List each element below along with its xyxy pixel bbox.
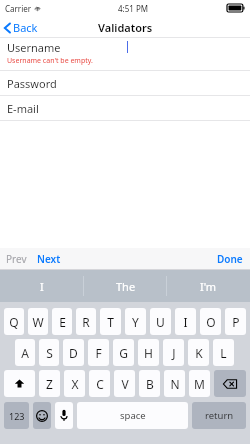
- staticText: F: [95, 345, 102, 361]
- button[interactable]: P: [225, 308, 246, 335]
- button[interactable]: Prev: [0, 249, 33, 269]
- button[interactable]: space: [77, 402, 188, 429]
- staticText: return: [205, 409, 234, 422]
- staticText: S: [46, 345, 53, 361]
- button[interactable]: Y: [125, 308, 146, 335]
- staticText: G: [119, 345, 128, 361]
- button[interactable]: Done: [210, 249, 250, 269]
- staticText: Z: [46, 376, 53, 392]
- button[interactable]: X: [64, 370, 85, 397]
- staticText: B: [146, 376, 154, 392]
- staticText: K: [195, 345, 203, 361]
- staticText: H: [144, 345, 153, 361]
- button[interactable]: V: [114, 370, 135, 397]
- button[interactable]: Shift: [4, 370, 35, 397]
- button[interactable]: 123: [4, 402, 29, 429]
- button[interactable]: N: [164, 370, 185, 397]
- staticText: R: [82, 314, 90, 330]
- staticText: J: [172, 345, 176, 361]
- staticText: 123: [9, 410, 25, 422]
- button[interactable]: L: [213, 339, 234, 366]
- button[interactable]: Z: [39, 370, 60, 397]
- button[interactable]: I: [0, 270, 84, 302]
- button[interactable]: I'm: [167, 270, 250, 302]
- staticText: 4:51 PM: [118, 3, 149, 14]
- button[interactable]: return: [192, 402, 246, 429]
- button[interactable]: Q: [4, 308, 24, 335]
- button[interactable]: G: [113, 339, 134, 366]
- button[interactable]: The: [84, 270, 167, 302]
- staticText: U: [156, 314, 165, 330]
- staticText: C: [96, 376, 104, 392]
- button[interactable]: R: [76, 308, 96, 335]
- button[interactable]: Username: [0, 38, 250, 56]
- staticText: M: [194, 376, 205, 392]
- staticText: D: [69, 345, 78, 361]
- staticText: E-mail: [7, 101, 39, 116]
- staticText: Username: [7, 40, 61, 55]
- staticText: P: [232, 314, 240, 330]
- button[interactable]: Password: [0, 71, 250, 95]
- staticText: Validators: [98, 20, 153, 35]
- button[interactable]: E-mail: [0, 96, 250, 120]
- staticText: I: [183, 314, 188, 330]
- button[interactable]: H: [138, 339, 159, 366]
- button[interactable]: J: [163, 339, 184, 366]
- staticText: N: [170, 376, 180, 392]
- button[interactable]: Back: [0, 18, 44, 37]
- staticText: Done: [217, 252, 243, 266]
- staticText: X: [71, 376, 79, 392]
- staticText: O: [206, 314, 216, 330]
- staticText: T: [107, 314, 114, 330]
- button[interactable]: Next: [33, 249, 65, 269]
- button[interactable]: Emoji: [33, 402, 51, 429]
- staticText: Y: [132, 314, 139, 330]
- button[interactable]: Dictation: [55, 402, 73, 429]
- staticText: Carrier: [5, 3, 32, 14]
- staticText: Password: [7, 76, 57, 91]
- button[interactable]: K: [188, 339, 209, 366]
- button[interactable]: I: [175, 308, 196, 335]
- button[interactable]: F: [88, 339, 109, 366]
- staticText: Prev: [6, 252, 27, 266]
- button[interactable]: M: [189, 370, 210, 397]
- staticText: I'm: [200, 279, 217, 294]
- button[interactable]: E: [52, 308, 72, 335]
- staticText: L: [220, 345, 227, 361]
- staticText: V: [121, 376, 129, 392]
- staticText: Username can't be empty.: [7, 56, 93, 66]
- staticText: Q: [9, 314, 19, 330]
- button[interactable]: S: [39, 339, 59, 366]
- button[interactable]: W: [28, 308, 48, 335]
- button[interactable]: O: [200, 308, 221, 335]
- button[interactable]: T: [100, 308, 121, 335]
- staticText: I: [40, 279, 44, 294]
- button[interactable]: U: [150, 308, 171, 335]
- staticText: E: [59, 314, 66, 330]
- button[interactable]: A: [15, 339, 35, 366]
- button[interactable]: Backspace: [214, 370, 246, 397]
- staticText: W: [32, 314, 44, 330]
- button[interactable]: D: [63, 339, 84, 366]
- staticText: space: [120, 409, 146, 422]
- staticText: The: [116, 279, 136, 294]
- button[interactable]: C: [89, 370, 110, 397]
- button[interactable]: B: [139, 370, 160, 397]
- staticText: Next: [37, 252, 61, 266]
- staticText: Back: [13, 20, 38, 35]
- staticText: A: [21, 345, 29, 361]
